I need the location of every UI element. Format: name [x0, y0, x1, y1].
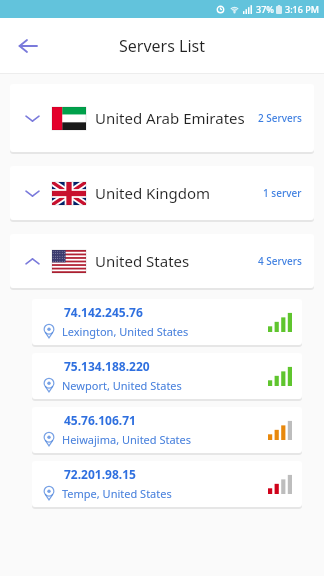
staticText: 3:16 PM	[285, 3, 319, 15]
staticText: 74.142.245.76	[64, 304, 143, 320]
staticText: 37%	[256, 3, 274, 15]
button[interactable]: 75.134.188.220	[32, 353, 302, 401]
staticText: United Kingdom	[95, 183, 263, 203]
staticText: 72.201.98.15	[64, 466, 136, 482]
button[interactable]: 45.76.106.71	[32, 407, 302, 455]
button[interactable]: 74.142.245.76	[32, 299, 302, 347]
staticText: 1 server	[263, 186, 302, 200]
staticText: 4 Servers	[258, 254, 302, 268]
staticText: 45.76.106.71	[64, 412, 136, 428]
button[interactable]: 72.201.98.15	[32, 461, 302, 509]
staticText: Lexington, United States	[62, 324, 189, 339]
button[interactable]: United Arab Emirates	[10, 84, 314, 154]
staticText: Newport, United States	[62, 378, 182, 393]
staticText: Heiwajima, United States	[62, 432, 192, 447]
staticText: Servers List	[119, 35, 205, 57]
staticText: Tempe, United States	[62, 486, 172, 501]
button[interactable]: United States	[10, 234, 314, 290]
staticText: 75.134.188.220	[64, 358, 150, 374]
button[interactable]: Back	[8, 26, 48, 66]
staticText: United Arab Emirates	[95, 108, 258, 128]
staticText: United States	[95, 251, 258, 271]
button[interactable]: United Kingdom	[10, 166, 314, 222]
staticText: 2 Servers	[258, 111, 302, 125]
